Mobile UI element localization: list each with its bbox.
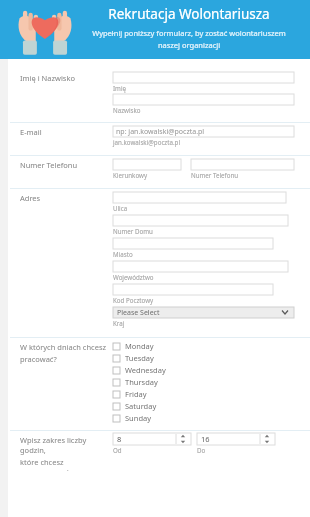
button[interactable]: Monday	[113, 340, 154, 352]
button[interactable]	[113, 192, 286, 203]
button[interactable]: Tuesday	[113, 352, 154, 364]
button[interactable]: Please Select	[113, 307, 294, 318]
staticText: W których dniach chcesz	[20, 342, 110, 352]
staticText: Thursday	[125, 377, 158, 387]
button[interactable]: Saturday	[113, 400, 157, 412]
staticText: Saturday	[125, 401, 157, 411]
staticText: E-mail	[20, 127, 110, 137]
staticText: Numer Telefonu	[191, 171, 239, 179]
staticText: Numer Telefonu	[20, 160, 110, 170]
staticText: Please Select	[117, 308, 160, 318]
button[interactable]	[113, 238, 273, 249]
staticText: naszej organizacji	[78, 40, 300, 50]
staticText: Friday	[125, 389, 147, 399]
staticText: 16	[201, 434, 210, 444]
staticText: Województwo	[113, 273, 154, 281]
staticText: Wypełnij poniższy formularz, by zostać w…	[78, 28, 300, 38]
staticText: Rekrutacja Wolontariusza	[78, 5, 300, 23]
button[interactable]	[113, 72, 294, 83]
button[interactable]: 16	[197, 433, 275, 445]
staticText: Miasto	[113, 250, 133, 258]
button[interactable]: Sunday	[113, 412, 152, 424]
button[interactable]	[113, 159, 181, 170]
staticText: Wpisz zakres liczby godzin,	[20, 435, 110, 455]
staticText: Nazwisko	[113, 106, 141, 114]
button[interactable]	[113, 284, 273, 295]
button[interactable]	[113, 261, 288, 272]
other: Hands holding heart logo	[16, 2, 74, 57]
staticText: Imię	[113, 84, 126, 92]
staticText: pracować?	[20, 354, 110, 364]
staticText: Sunday	[125, 413, 152, 423]
staticText: Kod Pocztowy	[113, 296, 154, 304]
staticText: Imię i Nazwisko	[20, 73, 110, 83]
staticText: 8	[117, 434, 122, 444]
staticText: Monday	[125, 341, 154, 351]
button[interactable]: Thursday	[113, 376, 158, 388]
button[interactable]: Wednesday	[113, 364, 166, 376]
staticText: Ulica	[113, 204, 128, 212]
staticText: Kraj	[113, 319, 125, 327]
button[interactable]: 8	[113, 433, 191, 445]
staticText: które chcesz przepracować w	[20, 457, 110, 471]
staticText: Kierunkowy	[113, 171, 148, 179]
staticText: Tuesday	[125, 353, 154, 363]
staticText: Od	[113, 446, 122, 454]
staticText: Do	[197, 446, 206, 454]
button[interactable]	[113, 94, 294, 105]
button[interactable]	[191, 159, 294, 170]
button[interactable]	[113, 215, 288, 226]
staticText: np: jan.kowalski@poczta.pl	[116, 127, 205, 137]
staticText: Numer Domu	[113, 227, 153, 235]
staticText: jan.kowalski@poczta.pl	[113, 138, 181, 146]
button[interactable]: Friday	[113, 388, 147, 400]
button[interactable]: np: jan.kowalski@poczta.pl	[113, 126, 294, 137]
staticText: Wednesday	[125, 365, 166, 375]
staticText: Adres	[20, 193, 110, 203]
